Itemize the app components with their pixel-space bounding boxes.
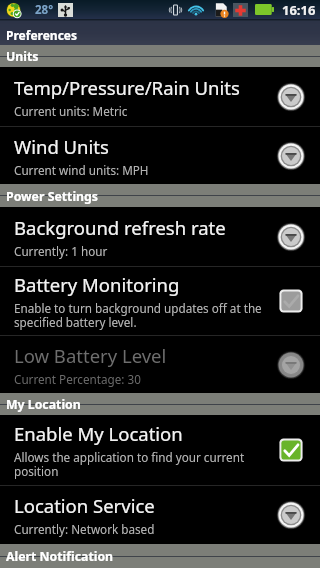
staticText: Wind Units [14, 134, 109, 159]
staticText: 16:16 [282, 1, 316, 19]
button[interactable]: Background refresh rate [0, 207, 320, 266]
button[interactable]: Enable My Location [0, 415, 320, 485]
staticText: Enable My Location [14, 421, 183, 446]
staticText: Low Battery Level [14, 343, 167, 368]
staticText: My Location [6, 396, 81, 413]
button[interactable]: Open options [276, 80, 306, 114]
button[interactable]: Open options [276, 348, 306, 382]
staticText: Enable to turn background updates off at… [14, 300, 262, 331]
button[interactable]: Checked [276, 433, 306, 467]
staticText: Alert Notification [6, 548, 114, 565]
button[interactable]: Battery Monitoring [0, 267, 320, 335]
button[interactable]: Low Battery Level [0, 336, 320, 393]
button[interactable]: Open options [276, 498, 306, 532]
staticText: 28° [35, 2, 54, 18]
staticText: Location Service [14, 493, 155, 518]
staticText: Current Percentage: 30 [14, 371, 141, 387]
staticText: Background refresh rate [14, 215, 226, 240]
button[interactable]: Open options [276, 139, 306, 173]
staticText: Battery Monitoring [14, 272, 180, 297]
staticText: Power Settings [6, 188, 99, 205]
button[interactable]: Location Service [0, 486, 320, 544]
staticText: Temp/Pressure/Rain Units [14, 75, 240, 100]
button[interactable]: Open options [276, 220, 306, 254]
button[interactable]: Wind Units [0, 127, 320, 184]
staticText: Allows the application to find your curr… [14, 449, 245, 480]
staticText: Current wind units: MPH [14, 162, 149, 178]
staticText: Currently: Network based [14, 521, 155, 537]
button[interactable]: Unchecked [276, 284, 306, 318]
staticText: Current units: Metric [14, 103, 128, 119]
staticText: Preferences [6, 27, 78, 43]
staticText: Units [6, 48, 39, 65]
staticText: Currently: 1 hour [14, 243, 108, 259]
button[interactable]: Temp/Pressure/Rain Units [0, 67, 320, 126]
